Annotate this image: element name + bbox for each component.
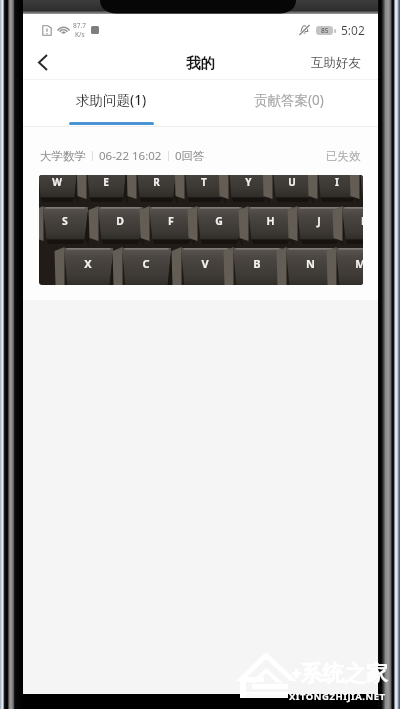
staticText: 大学数学 [40, 149, 86, 163]
staticText: 系统之家 [300, 660, 388, 688]
button[interactable]: Back [23, 45, 63, 80]
staticText: N [306, 256, 315, 271]
staticText: 我的 [186, 54, 215, 72]
staticText: 互助好友 [311, 55, 361, 71]
staticText: K/s [75, 30, 85, 39]
staticText: I [335, 175, 339, 189]
staticText: XITONGZHIJIA.NET [289, 690, 386, 703]
button[interactable]: 大学数学 [23, 127, 378, 300]
staticText: J [317, 214, 321, 228]
staticText: D [116, 214, 124, 228]
button[interactable]: 互助好友 [294, 46, 378, 80]
button[interactable]: 贡献答案(0) [200, 80, 378, 127]
staticText: R [153, 175, 160, 189]
staticText: 求助问题(1) [76, 91, 147, 109]
staticText: V [201, 256, 209, 271]
staticText: F [168, 214, 174, 228]
staticText: S [62, 214, 68, 228]
staticText: W [52, 175, 62, 189]
staticText: 5:02 [341, 22, 365, 38]
button[interactable]: 求助问题(1) [23, 80, 200, 127]
staticText: X [84, 256, 92, 271]
staticText: T [201, 175, 207, 189]
staticText: 85 [321, 26, 329, 35]
staticText: 06-22 16:02 [99, 148, 162, 164]
staticText: 贡献答案(0) [254, 91, 324, 109]
staticText: E [103, 175, 109, 189]
staticText: U [288, 175, 296, 189]
staticText: K [361, 214, 363, 228]
staticText: 已失效 [326, 149, 361, 163]
staticText: M [355, 256, 363, 271]
staticText: Y [245, 175, 252, 189]
staticText: G [215, 214, 223, 228]
staticText: H [266, 214, 275, 228]
staticText: 0回答 [175, 148, 205, 164]
staticText: C [142, 256, 150, 271]
staticText: 87.7 [73, 21, 86, 30]
staticText: B [253, 256, 261, 271]
